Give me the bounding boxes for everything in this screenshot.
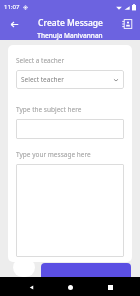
staticText: Select teacher (21, 75, 64, 84)
button[interactable]: Home (61, 278, 79, 296)
button[interactable] (16, 164, 124, 257)
button[interactable] (16, 119, 124, 139)
button[interactable]: Select teacher (16, 70, 124, 89)
staticText: Thenuja Manivannan (37, 31, 103, 40)
button[interactable]: Contacts (119, 16, 135, 32)
button[interactable]: Attach (13, 258, 35, 277)
staticText: 11:07 (4, 3, 20, 11)
button[interactable] (41, 263, 131, 277)
button[interactable]: Back (6, 16, 23, 33)
button[interactable]: Back (22, 278, 40, 296)
button[interactable]: Recents (101, 278, 119, 296)
staticText: Type the subject here (16, 105, 82, 114)
staticText: Type your message here (16, 150, 91, 159)
staticText: Select a teacher (16, 56, 65, 65)
staticText: Create Message (38, 17, 103, 29)
